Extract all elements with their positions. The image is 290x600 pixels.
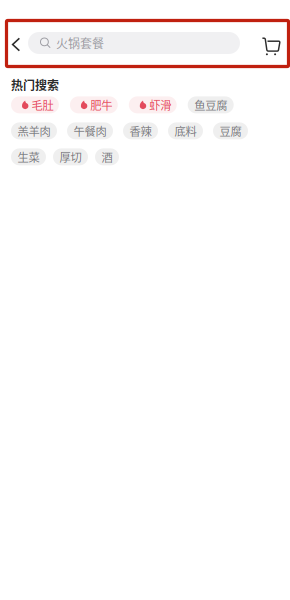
button[interactable]: 豆腐: [213, 122, 248, 139]
staticText: 午餐肉: [73, 123, 106, 139]
button[interactable]: 羔羊肉: [11, 122, 57, 139]
staticText: 毛肚: [31, 97, 53, 113]
staticText: 热门搜索: [11, 76, 59, 93]
staticText: 火锅套餐: [56, 34, 104, 52]
staticText: 香辣: [129, 123, 151, 139]
staticText: 厚切: [59, 149, 81, 165]
button[interactable]: 虾滑: [129, 96, 177, 113]
button[interactable]: 火锅套餐: [28, 32, 240, 54]
button[interactable]: 酒: [95, 148, 119, 165]
staticText: 虾滑: [149, 97, 171, 113]
button[interactable]: 毛肚: [11, 96, 59, 113]
button[interactable]: 厚切: [53, 148, 88, 165]
button[interactable]: 鱼豆腐: [188, 96, 234, 113]
staticText: 底料: [174, 123, 196, 139]
staticText: 鱼豆腐: [194, 97, 227, 113]
staticText: 生菜: [17, 149, 39, 165]
button[interactable]: Shopping cart: [258, 29, 284, 57]
staticText: 羔羊肉: [17, 123, 50, 139]
button[interactable]: 生菜: [11, 148, 46, 165]
staticText: 酒: [101, 149, 112, 165]
staticText: 肥牛: [90, 97, 112, 113]
button[interactable]: 底料: [168, 122, 203, 139]
button[interactable]: Back: [6, 29, 28, 57]
button[interactable]: 香辣: [123, 122, 158, 139]
button[interactable]: 午餐肉: [67, 122, 113, 139]
button[interactable]: 肥牛: [70, 96, 118, 113]
staticText: 豆腐: [219, 123, 241, 139]
